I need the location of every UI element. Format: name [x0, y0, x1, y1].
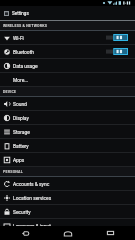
staticText: Wi-Fi — [13, 35, 24, 41]
staticText: Language & input — [13, 223, 51, 229]
button[interactable]: Back — [8, 226, 42, 240]
staticText: Security — [13, 209, 31, 215]
button[interactable]: Data usage — [0, 59, 135, 72]
button[interactable]: Wi-Fi — [0, 31, 135, 44]
button[interactable]: Battery — [0, 139, 135, 152]
staticText: Location services — [13, 195, 52, 201]
button[interactable]: Recent apps — [93, 226, 127, 240]
button[interactable]: Bluetooth — [0, 45, 135, 58]
staticText: Bluetooth — [13, 49, 34, 55]
button[interactable]: Home — [51, 226, 85, 240]
staticText: Sound — [13, 101, 27, 107]
button[interactable]: Location services — [0, 191, 135, 204]
staticText: Battery — [13, 143, 29, 149]
staticText: DEVICE — [3, 90, 17, 94]
button[interactable]: Apps — [0, 153, 135, 166]
staticText: Display — [13, 115, 29, 121]
staticText: Accounts & sync — [13, 181, 50, 187]
button[interactable]: Language & input — [0, 219, 135, 232]
staticText: Apps — [13, 157, 25, 163]
staticText: Settings — [12, 11, 29, 16]
button[interactable]: Sound — [0, 97, 135, 110]
button[interactable]: Security — [0, 205, 135, 218]
button[interactable]: Storage — [0, 125, 135, 138]
button[interactable]: Accounts & sync — [0, 177, 135, 190]
staticText: Data usage — [13, 63, 38, 69]
staticText: Storage — [13, 129, 30, 135]
staticText: PERSONAL — [3, 170, 23, 174]
staticText: More... — [13, 77, 29, 83]
button[interactable]: More... — [0, 73, 135, 86]
staticText: WIRELESS & NETWORKS — [3, 24, 48, 28]
button[interactable]: Display — [0, 111, 135, 124]
